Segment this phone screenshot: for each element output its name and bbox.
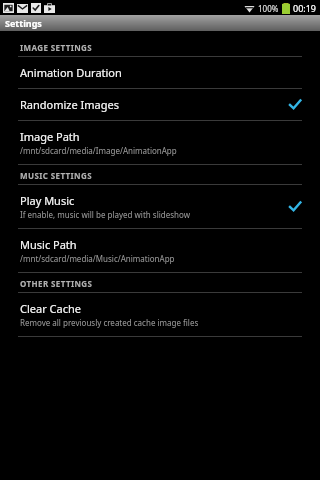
staticText: Play Music — [20, 193, 75, 208]
staticText: /mnt/sdcard/media/Music/AnimationApp — [20, 253, 175, 264]
staticText: /mnt/sdcard/media/Image/AnimationApp — [20, 145, 177, 156]
staticText: Music Path — [20, 237, 77, 252]
staticText: IMAGE SETTINGS — [20, 42, 93, 53]
button[interactable]: Play Music — [0, 185, 320, 229]
staticText: OTHER SETTINGS — [20, 278, 93, 289]
button[interactable]: Toggle setting — [288, 200, 302, 214]
button[interactable]: Animation Duration — [0, 57, 320, 89]
staticText: If enable, music will be played with sli… — [20, 209, 190, 220]
staticText: Randomize Images — [20, 97, 120, 112]
staticText: Image Path — [20, 129, 80, 144]
button[interactable]: Music Path — [0, 229, 320, 273]
button[interactable]: Image Path — [0, 121, 320, 165]
staticText: Settings — [5, 17, 42, 29]
button[interactable]: Clear Cache — [0, 293, 320, 337]
staticText: 00:19 — [293, 2, 317, 14]
staticText: Animation Duration — [20, 65, 122, 80]
button[interactable]: Randomize Images — [0, 89, 320, 121]
staticText: MUSIC SETTINGS — [20, 170, 93, 181]
staticText: Clear Cache — [20, 301, 81, 316]
staticText: Remove all previously created cache imag… — [20, 317, 199, 328]
staticText: 100% — [258, 3, 279, 14]
button[interactable]: Toggle setting — [288, 98, 302, 112]
button[interactable]: Settings — [0, 15, 320, 31]
